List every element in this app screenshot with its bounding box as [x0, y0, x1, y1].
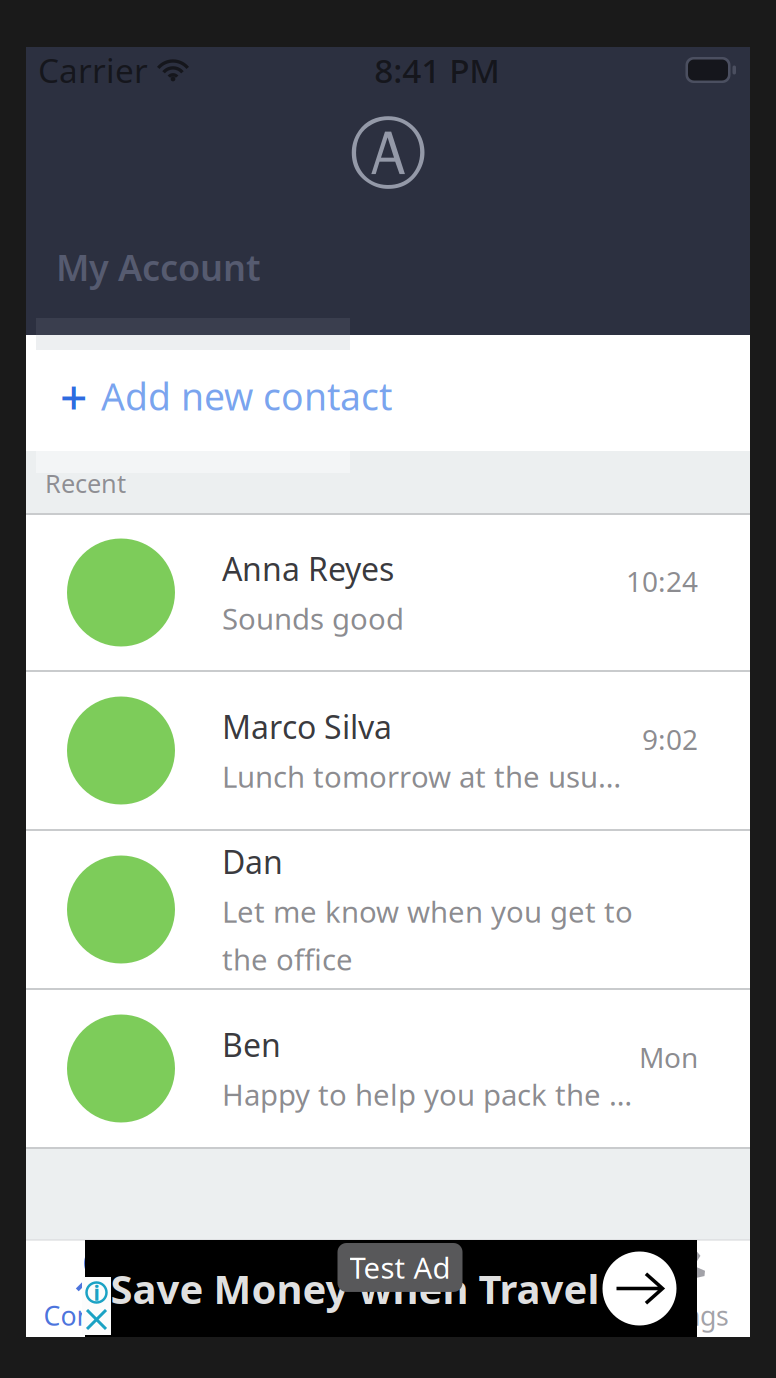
- staticText: Add new contact: [101, 371, 392, 421]
- staticText: Happy to help you pack the bags: [222, 1075, 633, 1114]
- button[interactable]: Calls: [316, 1240, 461, 1337]
- staticText: 10:24: [626, 562, 698, 600]
- staticText: Marco Silva: [222, 705, 392, 748]
- staticText: Save Money when Travel: [110, 1262, 599, 1315]
- button[interactable]: Open ad: [601, 1250, 677, 1326]
- button[interactable]: Marco Silva: [26, 672, 750, 831]
- button[interactable]: Contacts: [26, 1240, 171, 1337]
- staticText: the office: [222, 940, 353, 979]
- staticText: Calls: [359, 1298, 418, 1333]
- staticText: Lunch tomorrow at the usual place?: [222, 757, 636, 796]
- button[interactable]: Groups: [461, 1240, 606, 1337]
- staticText: 8:41 PM: [374, 48, 500, 92]
- button[interactable]: +: [26, 370, 750, 422]
- staticText: Anna Reyes: [222, 547, 394, 590]
- staticText: i: [93, 1278, 99, 1307]
- staticText: Dan: [222, 840, 283, 883]
- staticText: Settings: [627, 1298, 729, 1333]
- staticText: Test Ad: [349, 1248, 450, 1287]
- staticText: Sounds good: [222, 599, 404, 638]
- staticText: Recent: [45, 466, 126, 500]
- staticText: Ben: [222, 1023, 281, 1066]
- button[interactable]: Anna Reyes: [26, 515, 750, 672]
- staticText: Groups: [488, 1298, 578, 1333]
- button[interactable]: Chats: [171, 1240, 316, 1337]
- staticText: +: [60, 364, 87, 428]
- button[interactable]: Dan: [26, 831, 750, 990]
- staticText: 9:02: [642, 720, 698, 758]
- staticText: Chats: [208, 1298, 279, 1333]
- button[interactable]: Settings: [606, 1240, 750, 1337]
- button[interactable]: Ben: [26, 990, 750, 1149]
- staticText: Mon: [639, 1038, 698, 1076]
- staticText: Carrier: [38, 48, 148, 92]
- staticText: Ⓐ: [349, 107, 426, 202]
- staticText: Contacts: [43, 1298, 153, 1333]
- staticText: My Account: [56, 243, 261, 291]
- staticText: Let me know when you get to: [222, 892, 633, 931]
- button[interactable]: Ad information and close: [82, 1277, 111, 1335]
